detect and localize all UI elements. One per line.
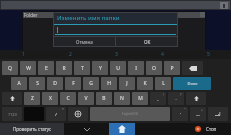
staticText: 1 (22, 51, 25, 58)
button[interactable]: N (114, 92, 130, 105)
button[interactable]: I (128, 61, 144, 75)
staticText: + (201, 107, 204, 112)
button[interactable]: — (190, 107, 206, 121)
staticText: Стоп (206, 126, 217, 132)
staticText: Y (99, 65, 102, 72)
button[interactable]: Tray icon (220, 2, 228, 9)
staticText: R (62, 65, 66, 72)
button[interactable]: H (101, 77, 117, 90)
staticText: U (116, 65, 120, 72)
staticText: J (126, 80, 128, 87)
button[interactable]: 3 (93, 50, 139, 59)
staticText: W (26, 65, 31, 72)
button[interactable]: S (29, 77, 45, 90)
staticText: * (62, 107, 64, 112)
button[interactable]: E (38, 61, 54, 75)
staticText: Изменить имя папки (57, 14, 120, 22)
button[interactable]: F (65, 77, 81, 90)
button[interactable]: 2 (47, 50, 93, 59)
staticText: G (89, 80, 93, 87)
button[interactable]: G (83, 77, 99, 90)
staticText: ?123 (8, 112, 17, 117)
button[interactable]: Done (173, 77, 211, 90)
button[interactable]: English(US) (90, 107, 170, 121)
staticText: 3 (115, 51, 118, 58)
button[interactable]: B (96, 92, 112, 105)
staticText: S (36, 80, 39, 87)
staticText: 5 (207, 51, 210, 58)
staticText: . (175, 96, 177, 101)
staticText: O (152, 65, 156, 72)
button[interactable]: Q (2, 61, 18, 75)
button[interactable]: C (60, 92, 76, 105)
staticText: E (45, 65, 48, 72)
button[interactable]: O (146, 61, 162, 75)
button[interactable]: U (110, 61, 126, 75)
button[interactable]: T (74, 61, 90, 75)
button[interactable]: K (137, 77, 153, 90)
staticText: B (102, 95, 106, 102)
button[interactable]: Home (109, 123, 135, 135)
staticText: Отмена (76, 39, 93, 45)
staticText: L (162, 80, 165, 87)
button[interactable]: Проверить статус (0, 123, 64, 135)
staticText: H (107, 80, 111, 87)
button[interactable]: P (164, 61, 180, 75)
staticText: A (17, 80, 21, 87)
button[interactable]: J (119, 77, 135, 90)
staticText: OK (144, 39, 151, 45)
staticText: ! (163, 92, 164, 97)
button[interactable]: / (46, 107, 66, 121)
staticText: Done (187, 81, 198, 86)
staticText: English(US) (122, 112, 138, 116)
button[interactable] (68, 107, 88, 121)
button[interactable]: 4 (139, 50, 185, 59)
button[interactable]: 5 (185, 50, 231, 59)
button[interactable]: A (11, 77, 27, 90)
staticText: Q (8, 65, 12, 72)
button[interactable]: Y (92, 61, 108, 75)
button[interactable]: ' (172, 107, 188, 121)
button[interactable]: 1 (0, 50, 47, 59)
button[interactable]: W (20, 61, 36, 75)
button[interactable] (2, 92, 22, 105)
button[interactable]: , (150, 92, 166, 105)
staticText: 2 (69, 51, 72, 58)
button[interactable] (182, 61, 203, 75)
button[interactable]: Отмена (53, 37, 115, 47)
staticText: N (120, 95, 124, 102)
button[interactable]: X (42, 92, 58, 105)
staticText: V (84, 95, 88, 102)
button[interactable]: ?123 (2, 107, 22, 121)
button[interactable]: V (78, 92, 94, 105)
staticText: " (184, 107, 186, 112)
staticText: — (196, 112, 200, 117)
button[interactable] (208, 107, 228, 121)
staticText: Проверить статус (13, 126, 52, 132)
button[interactable]: Back (64, 123, 109, 135)
button[interactable]: D (47, 77, 63, 90)
button[interactable]: M (132, 92, 148, 105)
button[interactable]: L (155, 77, 171, 90)
staticText: K (143, 80, 147, 87)
staticText: , (157, 96, 159, 101)
staticText: / (55, 112, 57, 117)
staticText: I (135, 65, 137, 72)
staticText: T (81, 65, 84, 72)
staticText: Folder (24, 12, 38, 18)
button[interactable]: Стоп (181, 123, 231, 135)
staticText: M (138, 95, 143, 102)
button[interactable]: . (168, 92, 184, 105)
button[interactable]: R (56, 61, 72, 75)
staticText: P (170, 65, 174, 72)
staticText: ' (180, 112, 181, 117)
button[interactable]: OK (116, 37, 178, 47)
button[interactable] (186, 92, 206, 105)
staticText: ? (180, 92, 182, 97)
staticText: X (49, 95, 52, 102)
button[interactable]: Z (24, 92, 40, 105)
staticText: Z (31, 95, 34, 102)
staticText: F (72, 80, 75, 87)
